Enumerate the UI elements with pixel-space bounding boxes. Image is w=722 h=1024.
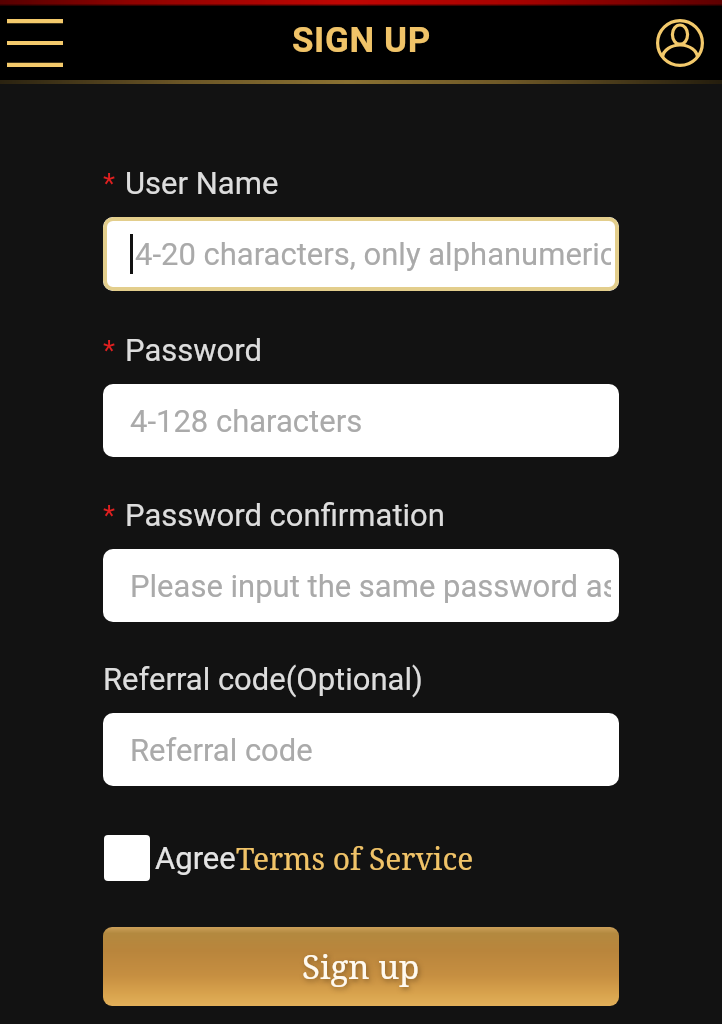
staticText: Please input the same password as above (130, 568, 611, 604)
button[interactable]: Account (649, 12, 711, 74)
button[interactable]: 4-20 characters, only alphanumeric (103, 217, 619, 291)
button[interactable]: Menu (7, 12, 63, 74)
button[interactable]: 4-128 characters (103, 384, 619, 457)
button[interactable]: Sign up (103, 927, 619, 1006)
staticText: Agree (155, 840, 236, 876)
staticText: SIGN UP (292, 20, 431, 61)
staticText: * (103, 334, 116, 367)
staticText: * (103, 167, 116, 200)
button[interactable]: Agree (104, 835, 474, 881)
staticText: Referral code (130, 732, 313, 768)
button[interactable]: Referral code (103, 713, 619, 786)
staticText: 4-128 characters (130, 403, 363, 439)
button[interactable]: Please input the same password as above (103, 549, 619, 622)
staticText: User Name (125, 165, 279, 201)
staticText: Password confirmation (125, 497, 445, 533)
staticText: * (103, 499, 116, 532)
staticText: Password (125, 332, 262, 368)
staticText: Sign up (302, 944, 420, 989)
staticText: Terms of Service (236, 838, 474, 879)
staticText: Referral code(Optional) (103, 661, 423, 697)
staticText: 4-20 characters, only alphanumeric (135, 236, 611, 272)
